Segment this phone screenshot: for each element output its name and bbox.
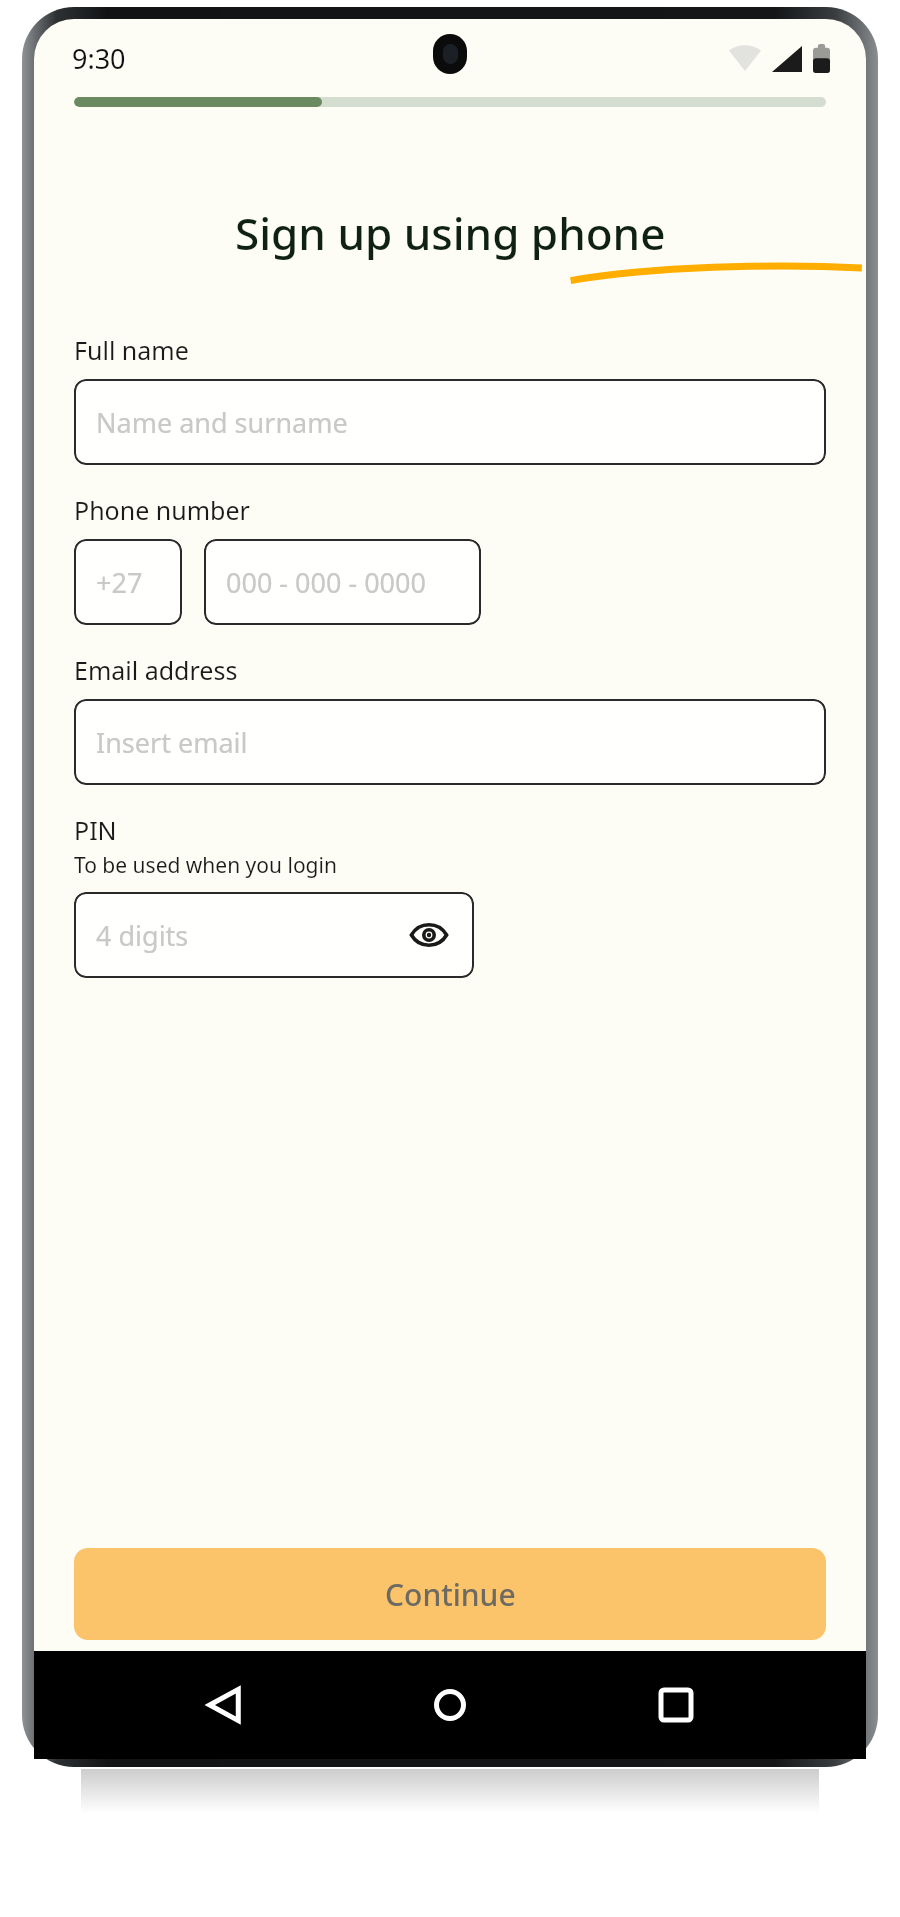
staticText: Full name xyxy=(74,333,189,367)
button[interactable]: By choosing to continue, you agree to Me… xyxy=(78,1666,822,1731)
button[interactable]: Recent apps xyxy=(640,1669,712,1741)
staticText: Email address xyxy=(74,653,238,687)
staticText: Phone number xyxy=(74,493,250,527)
staticText: To be used when you login xyxy=(74,851,337,880)
button[interactable]: Back xyxy=(188,1669,260,1741)
staticText: Sign up using phone xyxy=(235,203,666,263)
button[interactable]: 4 digits xyxy=(74,892,474,978)
staticText: 000 - 000 - 0000 xyxy=(226,564,426,601)
button[interactable]: Home xyxy=(414,1669,486,1741)
button[interactable]: 000 - 000 - 0000 xyxy=(204,539,481,625)
staticText: PIN xyxy=(74,813,117,847)
staticText: Insert email xyxy=(96,724,248,761)
button[interactable]: Continue xyxy=(74,1548,826,1640)
staticText: 4 digits xyxy=(96,917,189,954)
staticText: Continue xyxy=(385,1574,516,1615)
staticText: +27 xyxy=(96,564,143,601)
staticText: Name and surname xyxy=(96,404,348,441)
button[interactable]: Name and surname xyxy=(74,379,826,465)
button[interactable]: Show PIN xyxy=(406,912,452,958)
staticText: 9:30 xyxy=(72,40,126,77)
button[interactable]: Insert email xyxy=(74,699,826,785)
button[interactable]: +27 xyxy=(74,539,182,625)
staticText: By choosing to continue, you agree to Me… xyxy=(78,1666,822,1731)
